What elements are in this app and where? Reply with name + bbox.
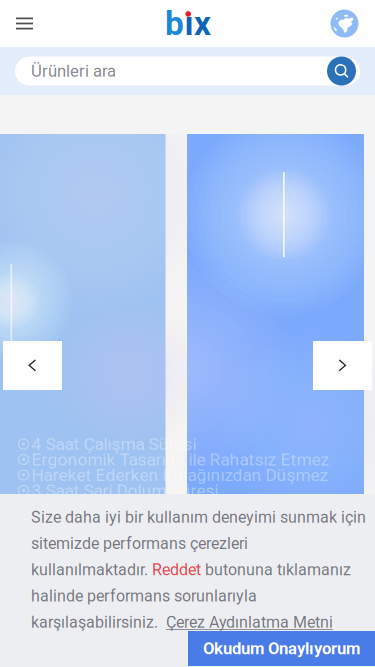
staticText: Reddet [152,560,201,579]
button[interactable]: Next slide [313,341,372,390]
staticText: Okudum Onaylıyorum [203,639,360,658]
staticText: Hareket Ederken Kulağınızdan Düşmez [31,465,328,485]
staticText: Ergonomik Tasarımı ile Rahatsız Etmez [31,449,329,470]
staticText: ı [184,4,193,43]
staticText: kullanılmaktadır. [31,560,152,579]
staticText: 3 Saat Şarj Dolum Süresi [31,480,218,501]
staticText: 4 Saat Çalışma Süresi [31,434,196,454]
staticText: Size daha iyi bir kullanım deneyimi sunm… [31,508,366,527]
button[interactable]: Language [328,0,361,47]
staticText: karşılaşabilirsiniz. [31,613,166,632]
staticText: butonuna tıklamanız [201,560,351,579]
staticText: sitemizde performans çerezleri [31,534,248,553]
staticText: b [165,4,184,43]
staticText: Çerez Aydınlatma Metni [166,613,333,632]
button[interactable]: Okudum Onaylıyorum [188,631,375,666]
button[interactable]: Menu [8,0,41,47]
staticText: Ürünleri ara [31,61,116,81]
staticText: x [194,4,211,43]
button[interactable]: bix [167,0,209,47]
button[interactable]: Previous slide [3,341,62,390]
staticText: halinde performans sorunlarıyla [31,587,257,606]
button[interactable]: Ürünleri ara [15,56,360,85]
